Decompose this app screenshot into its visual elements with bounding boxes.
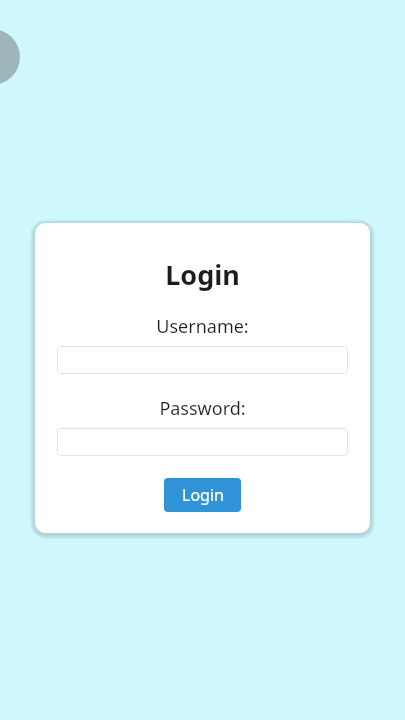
staticText: Login: [182, 484, 224, 506]
button[interactable]: Login: [164, 478, 241, 512]
button[interactable]: Password text field: [57, 428, 348, 456]
staticText: Username:: [156, 314, 249, 339]
button[interactable]: Username text field: [57, 346, 348, 374]
staticText: Password:: [159, 396, 246, 421]
staticText: Login: [165, 256, 240, 293]
